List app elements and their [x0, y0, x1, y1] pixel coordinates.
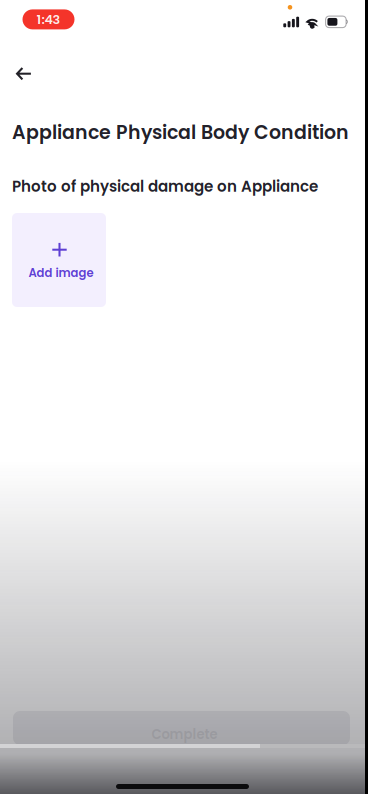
- staticText: Appliance Physical Body Condition: [12, 119, 349, 145]
- staticText: Add image: [28, 265, 93, 281]
- button[interactable]: Back: [0, 56, 48, 92]
- button[interactable]: Complete: [13, 711, 350, 745]
- button[interactable]: Add image: [12, 213, 106, 307]
- staticText: 1:43: [36, 10, 60, 28]
- staticText: Complete: [151, 725, 217, 743]
- staticText: Photo of physical damage on Appliance: [12, 176, 318, 197]
